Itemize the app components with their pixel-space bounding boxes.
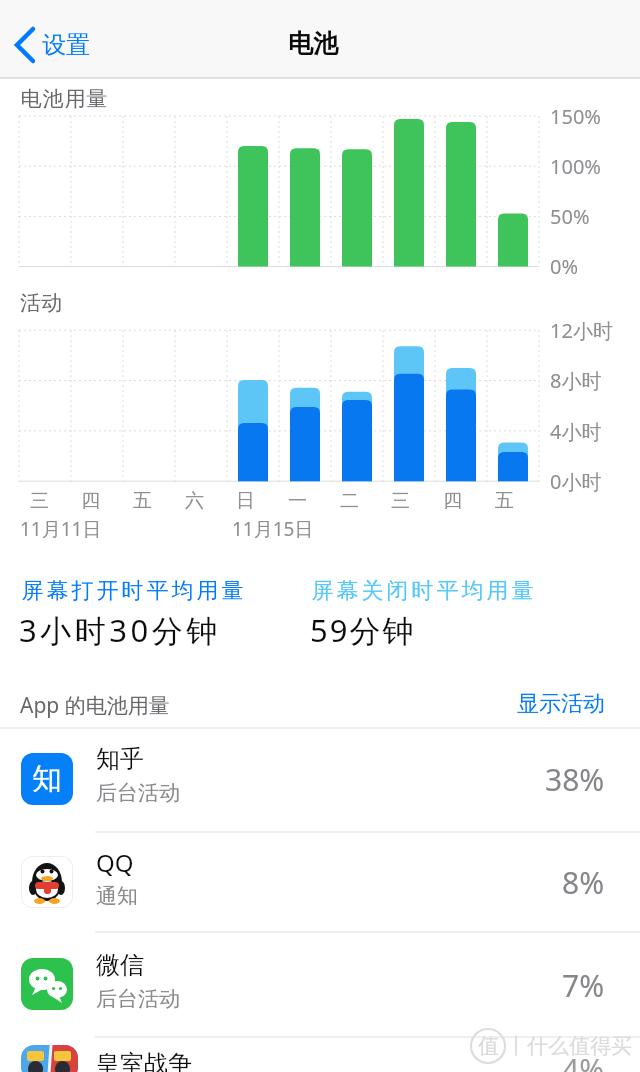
staticText: App 的电池用量 [20,691,170,720]
staticText: 丨什么值得买 [506,1033,632,1059]
staticText: 知乎 [96,744,144,774]
staticText: 59分钟 [310,609,416,651]
staticText: 日 [236,489,255,513]
staticText: 12小时 [550,317,613,344]
staticText: 五 [495,489,514,513]
button[interactable]: 皇室战争 [0,1037,640,1072]
staticText: 值 [478,1033,499,1059]
button[interactable]: 知 [0,727,640,832]
staticText: 4小时 [550,418,602,445]
staticText: 100% [550,153,601,180]
staticText: 知 [32,760,62,798]
staticText: 显示活动 [517,690,605,718]
staticText: 一 [288,489,307,513]
staticText: 屏幕关闭时平均用量 [310,577,535,605]
staticText: 11月15日 [232,516,314,542]
staticText: 设置 [42,30,90,60]
staticText: 0小时 [550,468,602,495]
staticText: 0% [550,253,579,280]
button[interactable]: 微信 [0,932,640,1037]
staticText: 六 [185,489,204,513]
button[interactable]: 显示活动 [475,679,605,729]
staticText: 电池 [288,28,338,59]
staticText: QQ [96,846,134,879]
staticText: 四 [443,489,462,513]
staticText: 二 [340,489,359,513]
staticText: 三 [30,489,49,513]
staticText: 4% [562,1049,605,1072]
staticText: 四 [81,489,100,513]
staticText: 38% [545,759,605,800]
staticText: 三 [391,489,410,513]
staticText: 微信 [96,950,144,980]
staticText: 3小时30分钟 [19,609,221,651]
staticText: 11月11日 [20,516,102,542]
staticText: 后台活动 [96,986,180,1012]
staticText: 活动 [20,290,62,316]
staticText: 8% [562,862,605,903]
button[interactable]: QQ [0,832,640,932]
staticText: 7% [562,965,605,1006]
staticText: 屏幕打开时平均用量 [20,577,245,605]
staticText: 50% [550,203,590,230]
staticText: 150% [550,103,601,130]
staticText: 皇室战争 [96,1049,192,1072]
staticText: 通知 [96,883,138,909]
staticText: 五 [133,489,152,513]
button[interactable]: 设置 [10,20,140,70]
staticText: 后台活动 [96,780,180,806]
staticText: 电池用量 [20,86,108,112]
staticText: 8小时 [550,367,602,394]
